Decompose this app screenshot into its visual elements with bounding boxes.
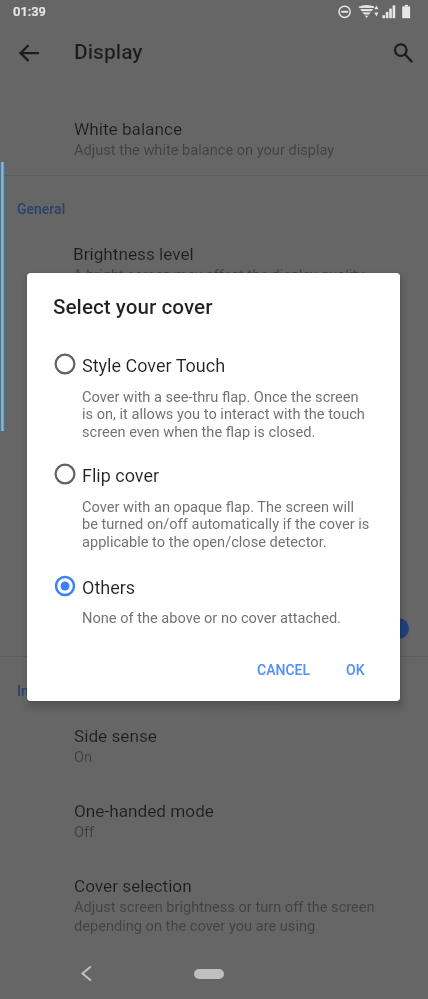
staticText: Cover selection: [74, 876, 192, 896]
staticText: 01:39: [13, 4, 47, 19]
staticText: Off: [74, 823, 95, 840]
staticText: General: [17, 201, 66, 217]
staticText: Cover with a see-thru flap. Once the scr…: [82, 388, 365, 441]
staticText: CANCEL: [257, 662, 311, 678]
button[interactable]: One-handed mode: [74, 801, 214, 840]
staticText: OK: [346, 662, 365, 678]
staticText: Int: [17, 683, 34, 699]
staticText: Adjust screen brightness or turn off the…: [74, 898, 375, 935]
button[interactable]: CANCEL: [249, 654, 319, 686]
staticText: One-handed mode: [74, 801, 214, 821]
button[interactable]: Others: [27, 564, 400, 608]
staticText: White balance: [74, 119, 183, 139]
staticText: Others: [82, 577, 136, 598]
staticText: Style Cover Touch: [82, 355, 226, 376]
staticText: On: [74, 748, 93, 765]
button[interactable]: Back: [69, 956, 103, 990]
staticText: Display: [74, 40, 143, 65]
staticText: A bright screen may affect the display q…: [73, 266, 365, 283]
button[interactable]: Search: [386, 37, 420, 71]
button[interactable]: Style Cover Touch: [27, 342, 400, 386]
button[interactable]: Navigate up: [12, 37, 46, 71]
button[interactable]: Side sense: [74, 726, 157, 765]
button[interactable]: Home: [194, 969, 224, 979]
staticText: Select your cover: [53, 295, 213, 319]
staticText: Adjust the white balance on your display: [74, 141, 335, 158]
button[interactable]: OK: [338, 654, 373, 686]
staticText: Side sense: [74, 726, 157, 746]
staticText: None of the above or no cover attached.: [82, 609, 341, 626]
button[interactable]: Cover selection: [74, 876, 375, 935]
staticText: Cover with an opaque flap. The screen wi…: [82, 498, 370, 551]
staticText: Flip cover: [82, 465, 160, 486]
button[interactable]: Flip cover: [27, 452, 400, 496]
staticText: Brightness level: [73, 244, 194, 264]
button[interactable]: White balance: [74, 119, 335, 158]
button[interactable]: Brightness level: [73, 244, 365, 283]
